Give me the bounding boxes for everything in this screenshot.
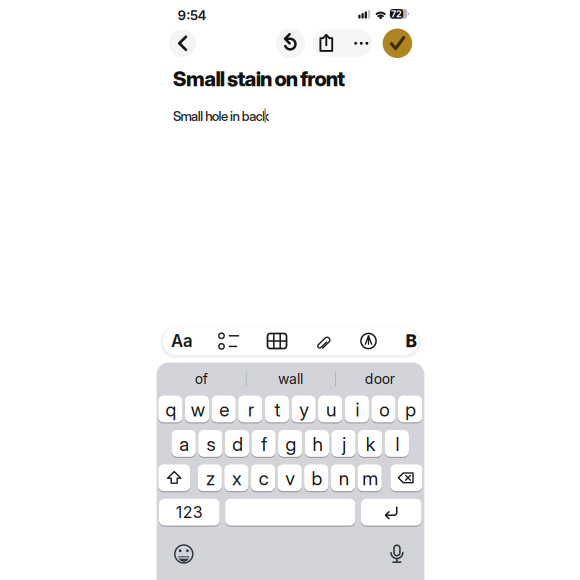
staticText: l bbox=[395, 432, 399, 456]
staticText: x bbox=[232, 467, 242, 490]
staticText: v bbox=[285, 467, 295, 490]
staticText: b bbox=[311, 467, 322, 490]
staticText: Small hole in back bbox=[173, 108, 269, 124]
staticText: f bbox=[261, 432, 267, 456]
staticText: w bbox=[191, 398, 205, 421]
staticText: k bbox=[366, 432, 376, 456]
staticText: B bbox=[405, 330, 417, 351]
staticText: i bbox=[355, 398, 359, 421]
staticText: 123 bbox=[176, 502, 203, 522]
staticText: r bbox=[248, 398, 254, 421]
staticText: s bbox=[206, 432, 215, 456]
staticText: n bbox=[339, 467, 349, 490]
staticText: q bbox=[165, 398, 176, 421]
staticText: z bbox=[206, 467, 215, 490]
staticText: of bbox=[195, 370, 208, 387]
staticText: g bbox=[285, 432, 296, 456]
staticText: c bbox=[259, 467, 269, 490]
staticText: e bbox=[219, 398, 229, 421]
staticText: o bbox=[379, 398, 389, 421]
staticText: 72 bbox=[391, 8, 402, 19]
staticText: 9:54 bbox=[178, 7, 206, 23]
staticText: Aa bbox=[171, 331, 193, 351]
staticText: a bbox=[179, 432, 189, 456]
staticText: j bbox=[342, 432, 346, 456]
staticText: m bbox=[362, 467, 378, 490]
staticText: p bbox=[405, 398, 416, 421]
staticText: h bbox=[313, 432, 323, 456]
staticText: y bbox=[299, 398, 309, 421]
staticText: d bbox=[232, 432, 243, 456]
staticText: wall bbox=[278, 370, 303, 387]
staticText: Small stain on front bbox=[173, 66, 345, 91]
staticText: u bbox=[326, 398, 336, 421]
staticText: t bbox=[275, 398, 281, 421]
staticText: door bbox=[365, 370, 395, 387]
